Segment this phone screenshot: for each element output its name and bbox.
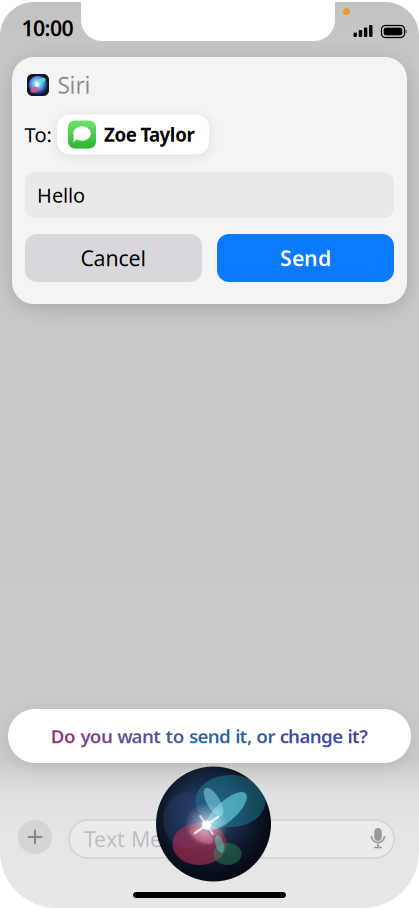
staticText: it, [235, 724, 256, 748]
button[interactable]: Zoe Taylor [57, 114, 209, 154]
staticText: Text Mes [84, 825, 172, 853]
button[interactable]: More options [18, 820, 52, 854]
staticText: you [80, 724, 117, 748]
staticText: it? [348, 724, 368, 748]
staticText: or [256, 724, 280, 748]
staticText: Siri [57, 70, 90, 100]
staticText: Zoe Taylor [104, 122, 195, 147]
staticText: To: [24, 121, 51, 148]
staticText: change [280, 724, 348, 748]
button[interactable]: Text Message field [69, 820, 394, 858]
staticText: Cancel [80, 244, 146, 272]
button[interactable]: Send [217, 234, 394, 282]
staticText: 10:00 [21, 14, 73, 42]
staticText: Send [280, 244, 331, 272]
staticText: Do [51, 724, 80, 748]
button[interactable]: Cancel [25, 234, 202, 282]
staticText: want [117, 724, 165, 748]
staticText: to [165, 724, 189, 748]
staticText: Hello [37, 182, 85, 208]
staticText: send [189, 724, 235, 748]
